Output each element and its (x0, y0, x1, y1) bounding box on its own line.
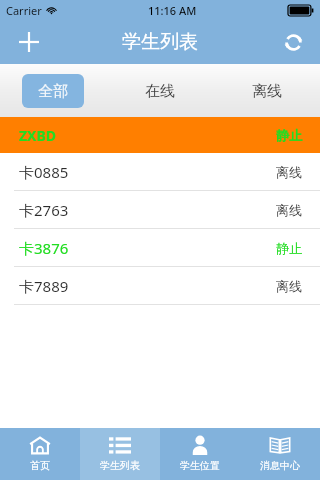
button[interactable]: 在线 (106, 74, 213, 108)
staticText: 离线 (276, 202, 302, 218)
button[interactable]: 卡7889 (0, 267, 320, 305)
staticText: 静止 (276, 127, 302, 143)
staticText: 静止 (276, 240, 302, 256)
staticText: 在线 (145, 82, 175, 101)
staticText: 学生位置 (180, 459, 220, 472)
staticText: 学生列表 (100, 459, 140, 472)
button[interactable]: 学生列表 (80, 428, 160, 480)
button[interactable]: 卡0885 (0, 153, 320, 191)
staticText: Carrier (6, 3, 42, 18)
button[interactable]: 首页 (0, 428, 80, 480)
button[interactable]: 消息中心 (240, 428, 320, 480)
button[interactable]: 卡2763 (0, 191, 320, 229)
staticText: 卡0885 (19, 162, 69, 182)
staticText: 学生列表 (122, 30, 198, 54)
staticText: 卡3876 (19, 238, 69, 258)
staticText: 离线 (276, 164, 302, 180)
button[interactable]: 学生位置 (160, 428, 240, 480)
staticText: 首页 (30, 459, 50, 472)
staticText: 11:16 AM (148, 3, 197, 18)
button[interactable]: 卡3876 (0, 229, 320, 267)
button[interactable]: 全部 (22, 74, 84, 108)
staticText: 全部 (38, 82, 68, 101)
button[interactable]: Refresh (276, 25, 310, 59)
button[interactable]: 离线 (213, 74, 320, 108)
staticText: 离线 (276, 278, 302, 294)
staticText: 离线 (252, 82, 282, 101)
button[interactable]: ZXBD (0, 117, 320, 153)
staticText: 卡7889 (19, 276, 69, 296)
staticText: 卡2763 (19, 200, 69, 220)
staticText: ZXBD (19, 126, 57, 145)
staticText: 消息中心 (260, 459, 300, 472)
button[interactable]: Add (12, 25, 46, 59)
